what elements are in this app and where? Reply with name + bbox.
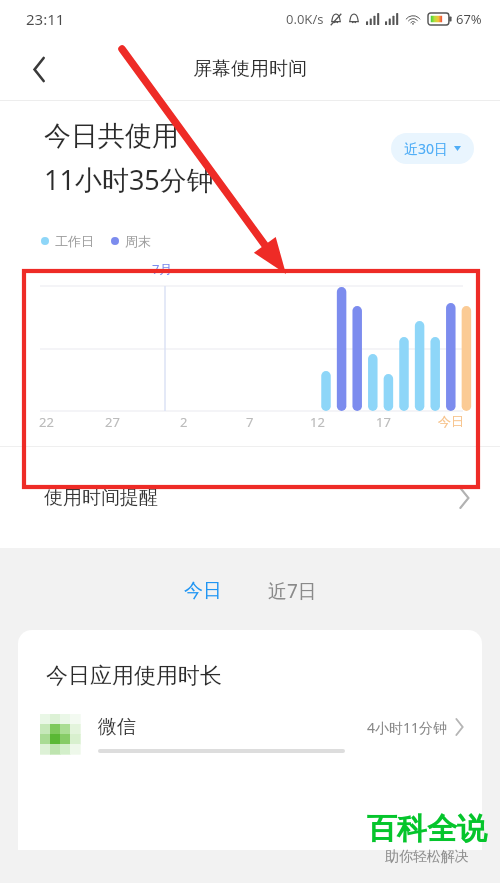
button[interactable]: Back — [16, 46, 62, 92]
button[interactable]: 近7日 — [253, 569, 332, 613]
staticText: 工作日 — [55, 233, 94, 249]
staticText: 7 — [246, 413, 254, 431]
staticText: 23:11 — [26, 9, 65, 29]
staticText: 4小时11分钟 — [367, 718, 448, 737]
staticText: 2 — [180, 413, 188, 431]
staticText: 今日 — [438, 413, 464, 429]
staticText: 0.0K/s — [286, 10, 324, 28]
staticText: 近30日 — [404, 139, 449, 158]
staticText: 周末 — [125, 233, 151, 249]
staticText: 使用时间提醒 — [44, 486, 158, 510]
staticText: 微信 — [98, 715, 136, 739]
button[interactable]: 使用时间提醒 — [0, 447, 500, 548]
staticText: 助你轻松解决 — [385, 848, 469, 866]
staticText: 7月 — [152, 260, 173, 278]
staticText: 12 — [310, 413, 325, 431]
staticText: 11小时35分钟 — [44, 161, 214, 198]
staticText: 27 — [105, 413, 120, 431]
staticText: 近7日 — [268, 578, 317, 604]
staticText: 今日 — [184, 579, 222, 603]
button[interactable]: 今日 — [169, 570, 237, 612]
staticText: 今日应用使用时长 — [46, 662, 222, 690]
staticText: 屏幕使用时间 — [193, 57, 307, 81]
staticText: 百科全说 — [367, 810, 487, 848]
button[interactable]: 微信 — [18, 714, 482, 754]
staticText: 67% — [456, 10, 482, 28]
button[interactable]: 近30日 — [391, 133, 474, 164]
staticText: 17 — [376, 413, 391, 431]
staticText: 今日共使用 — [44, 119, 179, 153]
staticText: 22 — [39, 413, 54, 431]
